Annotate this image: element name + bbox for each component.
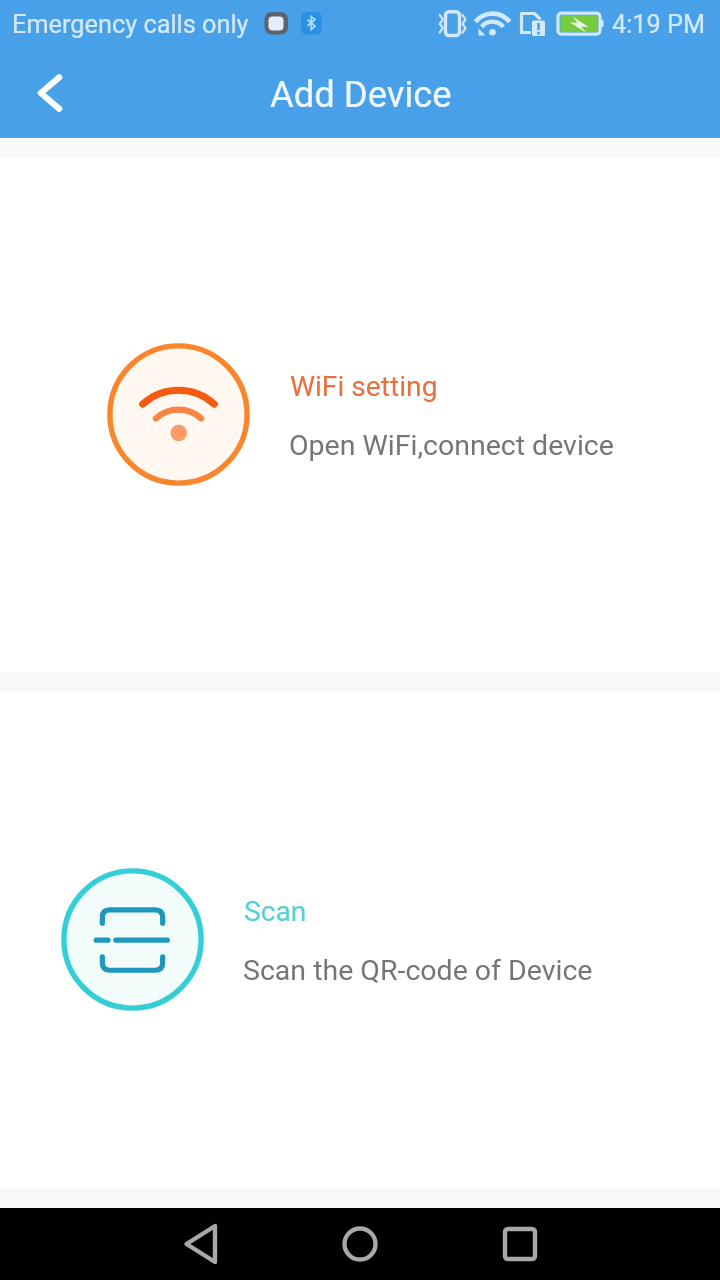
staticText: Emergency calls only — [12, 10, 249, 40]
button[interactable]: Scan — [0, 692, 720, 1188]
button[interactable]: Recent apps — [475, 1208, 565, 1280]
staticText: Scan the QR-code of Device — [243, 954, 593, 987]
button[interactable]: Home — [315, 1208, 405, 1280]
staticText: Add Device — [270, 73, 452, 116]
staticText: Open WiFi,connect device — [289, 429, 614, 462]
staticText: WiFi setting — [290, 370, 438, 403]
button[interactable]: Back — [156, 1208, 246, 1280]
staticText: 4:19 PM — [612, 10, 706, 40]
staticText: Scan — [244, 895, 307, 928]
button[interactable]: WiFi setting — [0, 158, 720, 673]
button[interactable]: Back — [4, 53, 84, 133]
